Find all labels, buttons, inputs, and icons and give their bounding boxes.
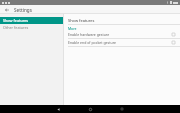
staticText: Settings	[14, 7, 32, 13]
button[interactable]: Home	[82, 105, 98, 113]
staticText: Show features	[68, 18, 95, 23]
other: Toggle Enable hardware gesture	[171, 32, 176, 37]
button[interactable]: Recent apps	[114, 105, 130, 113]
button[interactable]: Other features	[0, 24, 63, 31]
button[interactable]: Show features	[0, 17, 63, 24]
staticText: Other features	[3, 25, 29, 30]
button[interactable]: Enable hardware gesture	[64, 31, 180, 38]
staticText: Enable hardware gesture	[68, 32, 171, 37]
button[interactable]: Enable end of pocket gesture	[64, 39, 180, 46]
other: Toggle Enable end of pocket gesture	[171, 40, 176, 45]
button[interactable]: Back	[50, 105, 66, 113]
staticText: Enable end of pocket gesture	[68, 40, 171, 45]
button[interactable]: Navigate up	[3, 6, 11, 14]
staticText: Show features	[3, 18, 29, 23]
staticText: More	[68, 26, 77, 31]
